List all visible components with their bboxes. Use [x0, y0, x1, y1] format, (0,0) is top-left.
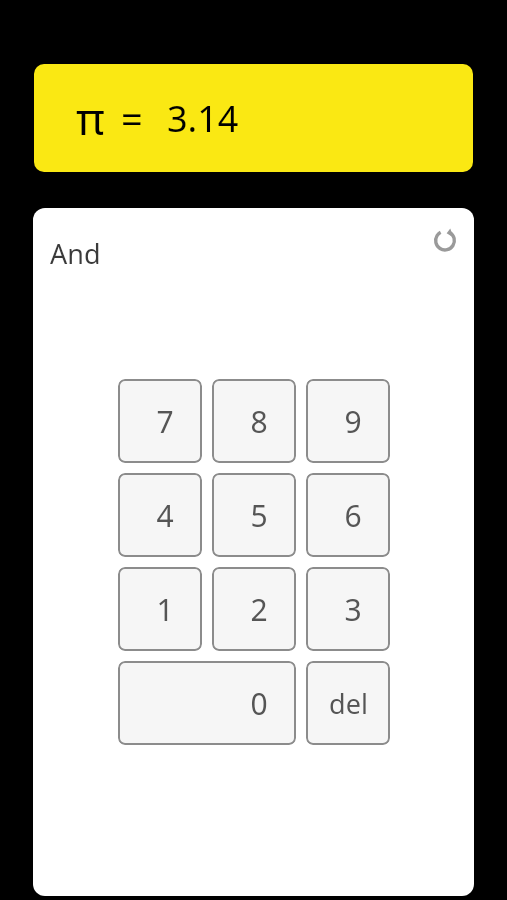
- staticText: =: [121, 92, 143, 144]
- staticText: 8: [250, 401, 268, 442]
- button[interactable]: 5: [212, 473, 296, 557]
- button[interactable]: 4: [118, 473, 202, 557]
- button[interactable]: 9: [306, 379, 390, 463]
- staticText: 1: [156, 589, 174, 630]
- button[interactable]: 0: [118, 661, 296, 745]
- staticText: π: [76, 88, 105, 148]
- button[interactable]: Reset: [428, 222, 462, 256]
- button[interactable]: 2: [212, 567, 296, 651]
- staticText: 5: [250, 495, 268, 536]
- staticText: 2: [250, 589, 268, 630]
- staticText: 3: [344, 589, 362, 630]
- staticText: And: [50, 235, 101, 272]
- staticText: 7: [156, 401, 174, 442]
- button[interactable]: 7: [118, 379, 202, 463]
- staticText: 4: [156, 495, 174, 536]
- staticText: 9: [344, 401, 362, 442]
- staticText: 0: [250, 683, 268, 724]
- staticText: 6: [344, 495, 362, 536]
- button[interactable]: del: [306, 661, 390, 745]
- button[interactable]: 8: [212, 379, 296, 463]
- staticText: del: [329, 685, 368, 722]
- button[interactable]: 1: [118, 567, 202, 651]
- button[interactable]: 3: [306, 567, 390, 651]
- button[interactable]: 6: [306, 473, 390, 557]
- staticText: 3.14: [167, 94, 239, 143]
- button[interactable]: π: [34, 64, 473, 172]
